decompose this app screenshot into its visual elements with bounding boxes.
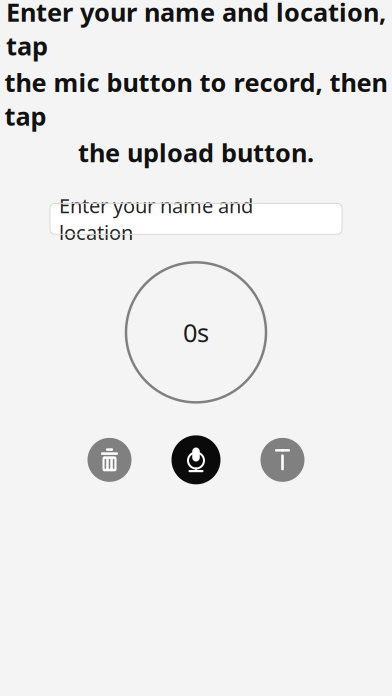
button[interactable]: Delete recording bbox=[87, 438, 131, 482]
button[interactable]: Record bbox=[171, 435, 220, 484]
staticText: Enter your name and location bbox=[59, 192, 253, 245]
staticText: Enter your name and location, tap bbox=[6, 0, 386, 62]
staticText: 0s bbox=[183, 315, 209, 349]
button[interactable]: Enter your name and location bbox=[50, 203, 342, 234]
staticText: the mic button to record, then tap bbox=[4, 65, 387, 133]
button[interactable]: Upload bbox=[260, 438, 304, 482]
staticText: the upload button. bbox=[78, 136, 314, 169]
